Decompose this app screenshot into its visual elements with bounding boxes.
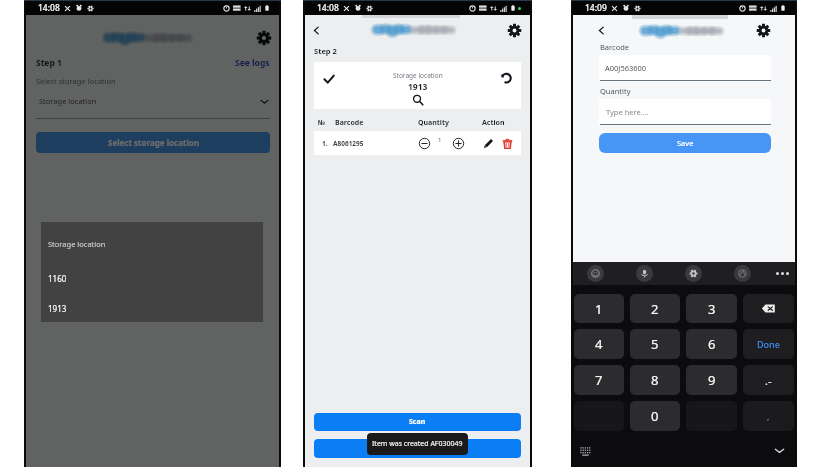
staticText: Select storage location — [36, 76, 116, 86]
staticText: Done — [757, 338, 780, 350]
button[interactable]: 1160 — [41, 270, 263, 287]
button[interactable]: 4 — [574, 329, 624, 359]
staticText: Save — [677, 138, 694, 148]
button[interactable]: 0 — [630, 401, 680, 431]
staticText: 1 — [595, 300, 603, 318]
button[interactable]: 6 — [686, 329, 737, 359]
staticText: 1 — [438, 136, 442, 144]
staticText: Storage location — [393, 71, 443, 80]
staticText: Storage location — [48, 239, 106, 249]
staticText: Action — [482, 118, 505, 128]
button[interactable]: 2 — [630, 294, 680, 323]
button[interactable]: 8 — [630, 365, 680, 395]
staticText: A8061295 — [333, 139, 364, 148]
button[interactable]: 5 — [630, 329, 680, 359]
button[interactable]: Delete — [502, 138, 513, 149]
button[interactable]: Scan — [314, 413, 521, 431]
button[interactable]: Increase quantity — [452, 137, 465, 150]
staticText: 14:08 — [317, 2, 339, 14]
button[interactable]: Decrease quantity — [418, 137, 431, 150]
staticText: Quantity — [600, 86, 631, 96]
staticText: Barcode — [335, 118, 364, 128]
staticText: 8 — [651, 371, 659, 389]
button[interactable]: Search — [412, 94, 424, 106]
staticText: 1. — [322, 139, 328, 148]
staticText: 14:09 — [585, 2, 607, 14]
staticText: 2 — [651, 300, 659, 318]
staticText: Step 2 — [314, 46, 337, 56]
button[interactable]: Type here.... — [599, 99, 771, 124]
button[interactable]: 3 — [686, 294, 737, 323]
staticText: 7 — [595, 371, 603, 389]
button[interactable]: Keyboard settings — [685, 265, 702, 282]
staticText: Type here.... — [606, 107, 649, 117]
staticText: 3 — [708, 300, 716, 318]
button[interactable]: , — [743, 401, 794, 431]
staticText: A00J563600 — [605, 63, 647, 73]
staticText: 14:08 — [38, 2, 60, 14]
staticText: Storage location — [39, 96, 97, 106]
button[interactable]: Done — [743, 329, 794, 359]
button[interactable]: Settings — [507, 23, 522, 38]
button[interactable]: Backspace — [743, 294, 794, 323]
button[interactable]: Switch keyboard — [580, 445, 591, 456]
button[interactable]: Add manually — [314, 439, 521, 458]
button[interactable]: 7 — [574, 365, 624, 395]
button[interactable]: 1 — [574, 294, 624, 323]
button[interactable]: More options — [767, 262, 797, 285]
button[interactable]: Select storage location — [36, 132, 270, 153]
staticText: Step 1 — [36, 57, 62, 69]
staticText: 6 — [708, 335, 716, 353]
staticText: .- — [765, 373, 772, 388]
button[interactable]: Translate — [734, 265, 751, 282]
button[interactable]: 9 — [686, 365, 737, 395]
staticText: 0 — [651, 407, 659, 425]
button[interactable]: Save — [599, 133, 771, 153]
staticText: 9 — [708, 371, 716, 389]
staticText: № — [318, 118, 326, 128]
staticText: Add manually — [394, 444, 442, 454]
staticText: Quantity — [418, 118, 449, 128]
staticText: 5 — [651, 335, 659, 353]
staticText: 4 — [595, 335, 603, 353]
button[interactable]: Emoji — [587, 265, 604, 282]
button[interactable]: A00J563600 — [599, 55, 771, 80]
button[interactable]: Reset — [499, 71, 513, 85]
staticText: Scan — [409, 417, 426, 427]
staticText: Select storage location — [108, 137, 199, 148]
button[interactable]: Back — [310, 24, 323, 37]
button[interactable]: Back — [595, 24, 608, 37]
button[interactable]: Storage location — [36, 93, 270, 109]
button[interactable]: See logs — [235, 57, 270, 69]
staticText: Barcode — [600, 42, 630, 52]
staticText: 1160 — [48, 273, 67, 284]
staticText: 1913 — [48, 303, 67, 314]
button[interactable]: 1913 — [41, 300, 263, 317]
button[interactable]: Settings — [756, 23, 771, 38]
button[interactable]: Hide keyboard — [773, 444, 786, 457]
button[interactable]: Confirm — [323, 73, 335, 85]
button[interactable]: Voice input — [636, 265, 653, 282]
staticText: , — [767, 410, 770, 422]
button[interactable]: Settings — [256, 30, 272, 46]
button[interactable]: Edit — [483, 138, 494, 149]
staticText: Item was created AF030049 — [372, 439, 463, 449]
button[interactable]: .- — [743, 365, 794, 395]
staticText: 1913 — [408, 81, 428, 93]
